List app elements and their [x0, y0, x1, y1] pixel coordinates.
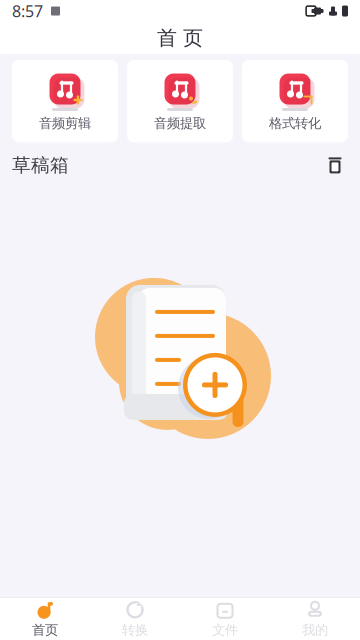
button[interactable]: 格式转化: [242, 60, 348, 142]
staticText: 格式转化: [269, 115, 321, 131]
staticText: 8:57: [12, 0, 43, 22]
button[interactable]: 文件: [180, 596, 270, 640]
button[interactable]: 音频提取: [127, 60, 233, 142]
button[interactable]: 首页: [0, 596, 90, 640]
staticText: 草稿箱: [12, 154, 69, 177]
button[interactable]: 转换: [90, 596, 180, 640]
button[interactable]: 音频剪辑: [12, 60, 118, 142]
staticText: 我的: [302, 622, 328, 638]
staticText: 首 页: [157, 26, 203, 50]
staticText: 文件: [212, 622, 238, 638]
staticText: 音频剪辑: [39, 115, 91, 131]
button[interactable]: 清空草稿箱: [322, 152, 348, 178]
button[interactable]: 我的: [270, 596, 360, 640]
staticText: 首页: [32, 622, 58, 638]
staticText: 音频提取: [154, 115, 206, 131]
staticText: 转换: [122, 622, 148, 638]
